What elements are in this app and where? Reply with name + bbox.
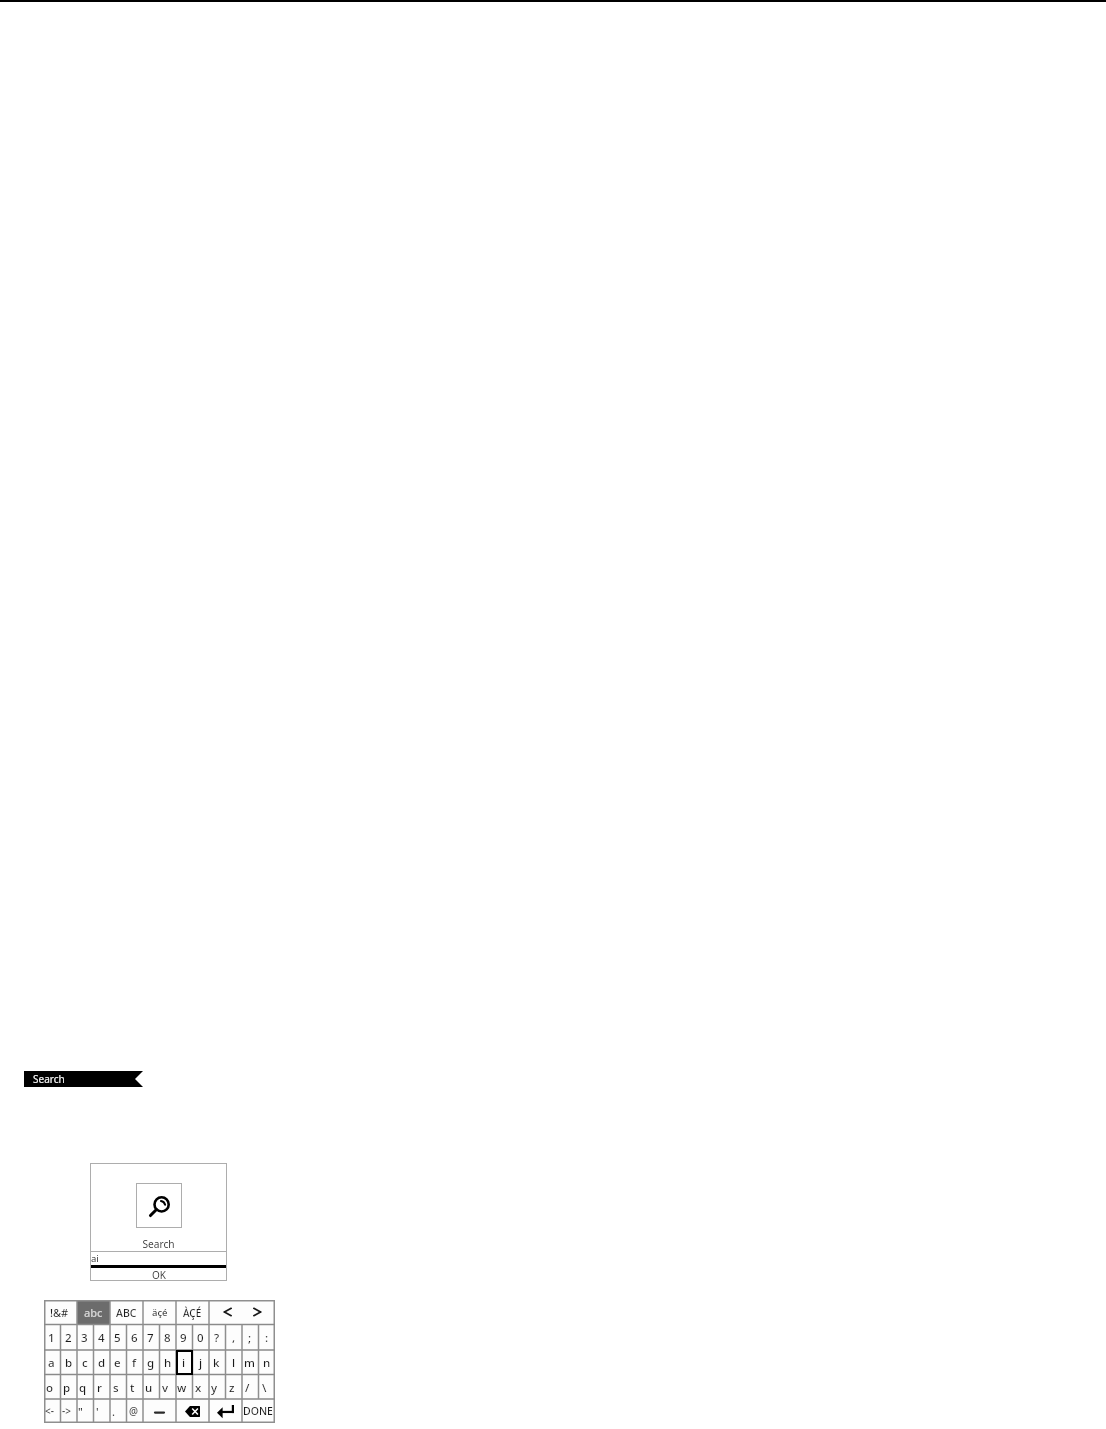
button[interactable]: OK (90, 1268, 227, 1281)
button[interactable]: n (259, 1350, 276, 1375)
staticText: Search (90, 1237, 227, 1251)
button[interactable]: ÀÇÉ (176, 1300, 209, 1325)
staticText: f (132, 1355, 137, 1371)
button[interactable]: äçé (143, 1300, 176, 1325)
button[interactable]: Search (24, 1071, 143, 1087)
button[interactable]: ai (90, 1252, 227, 1265)
staticText: 3 (81, 1330, 88, 1346)
staticText: g (147, 1355, 155, 1371)
button[interactable]: t (127, 1375, 144, 1400)
staticText: <- (45, 1404, 54, 1418)
button[interactable]: u (143, 1375, 160, 1400)
button[interactable]: 6 (127, 1325, 144, 1351)
button[interactable]: a (44, 1350, 61, 1375)
button[interactable]: / (242, 1375, 259, 1400)
staticText: y (211, 1380, 218, 1396)
staticText: / (245, 1380, 250, 1396)
button[interactable]: DONE (242, 1399, 275, 1423)
button[interactable]: j (193, 1350, 210, 1375)
staticText: a (48, 1355, 55, 1371)
staticText: l (232, 1355, 236, 1371)
staticText: 2 (65, 1330, 72, 1346)
button[interactable]: h (160, 1350, 177, 1375)
button[interactable]: ; (242, 1325, 259, 1351)
staticText: q (79, 1380, 87, 1396)
button[interactable]: y (209, 1375, 226, 1400)
button[interactable]: w (176, 1375, 193, 1400)
button[interactable]: 0 (193, 1325, 210, 1351)
staticText: ' (96, 1404, 99, 1419)
button[interactable]: f (127, 1350, 144, 1375)
button[interactable]: x (193, 1375, 210, 1400)
button[interactable]: o (44, 1375, 61, 1400)
button[interactable]: ' (94, 1399, 111, 1423)
staticText: w (177, 1380, 187, 1396)
button[interactable]: q (77, 1375, 94, 1400)
staticText: ; (248, 1330, 252, 1346)
staticText: t (130, 1380, 135, 1396)
button[interactable]: \ (259, 1375, 276, 1400)
button[interactable]: !&# (44, 1300, 77, 1325)
button[interactable]: k (209, 1350, 226, 1375)
button[interactable]: r (94, 1375, 111, 1400)
staticText: x (195, 1380, 202, 1396)
button[interactable]: m (242, 1350, 259, 1375)
button[interactable]: Space (143, 1399, 176, 1423)
button[interactable]: 3 (77, 1325, 94, 1351)
staticText: abc (84, 1305, 103, 1320)
staticText: 0 (197, 1330, 204, 1346)
button[interactable]: s (110, 1375, 127, 1400)
button[interactable]: 4 (94, 1325, 111, 1351)
staticText: ÀÇÉ (183, 1306, 202, 1320)
button[interactable]: Enter (209, 1399, 242, 1423)
button[interactable]: ? (209, 1325, 226, 1351)
button[interactable]: : (259, 1325, 276, 1351)
button[interactable]: abc (77, 1300, 110, 1325)
staticText: 9 (180, 1330, 187, 1346)
staticText: 8 (164, 1330, 171, 1346)
button[interactable]: i (176, 1350, 193, 1375)
staticText: 4 (98, 1330, 105, 1346)
button[interactable]: e (110, 1350, 127, 1375)
staticText: c (82, 1355, 88, 1371)
button[interactable]: . (110, 1399, 127, 1423)
button[interactable]: v (160, 1375, 177, 1400)
staticText: m (244, 1355, 255, 1371)
staticText: -> (62, 1404, 71, 1418)
staticText: ABC (116, 1306, 137, 1320)
staticText: h (164, 1355, 172, 1371)
staticText: e (114, 1355, 121, 1371)
staticText: b (65, 1355, 73, 1371)
button[interactable]: " (77, 1399, 94, 1423)
button[interactable]: 9 (176, 1325, 193, 1351)
button[interactable]: 7 (143, 1325, 160, 1351)
button[interactable]: p (61, 1375, 78, 1400)
staticText: " (78, 1404, 83, 1419)
button[interactable]: @ (127, 1399, 144, 1423)
button[interactable]: 2 (61, 1325, 78, 1351)
staticText: n (263, 1355, 271, 1371)
staticText: ai (91, 1252, 99, 1265)
other: Search (136, 1183, 182, 1228)
button[interactable]: l (226, 1350, 243, 1375)
button[interactable]: -> (61, 1399, 78, 1423)
staticText: 6 (131, 1330, 138, 1346)
button[interactable]: 8 (160, 1325, 177, 1351)
staticText: j (199, 1355, 203, 1371)
staticText: OK (152, 1268, 166, 1281)
staticText: ? (214, 1330, 220, 1346)
staticText: \ (262, 1380, 267, 1396)
button[interactable]: g (143, 1350, 160, 1375)
button[interactable]: Previous or next page (209, 1300, 275, 1325)
button[interactable]: , (226, 1325, 243, 1351)
button[interactable]: <- (44, 1399, 61, 1423)
button[interactable]: z (226, 1375, 243, 1400)
button[interactable]: 5 (110, 1325, 127, 1351)
button[interactable]: c (77, 1350, 94, 1375)
staticText: d (98, 1355, 106, 1371)
button[interactable]: 1 (44, 1325, 61, 1351)
button[interactable]: Backspace (176, 1399, 209, 1423)
button[interactable]: b (61, 1350, 78, 1375)
button[interactable]: d (94, 1350, 111, 1375)
button[interactable]: ABC (110, 1300, 143, 1325)
